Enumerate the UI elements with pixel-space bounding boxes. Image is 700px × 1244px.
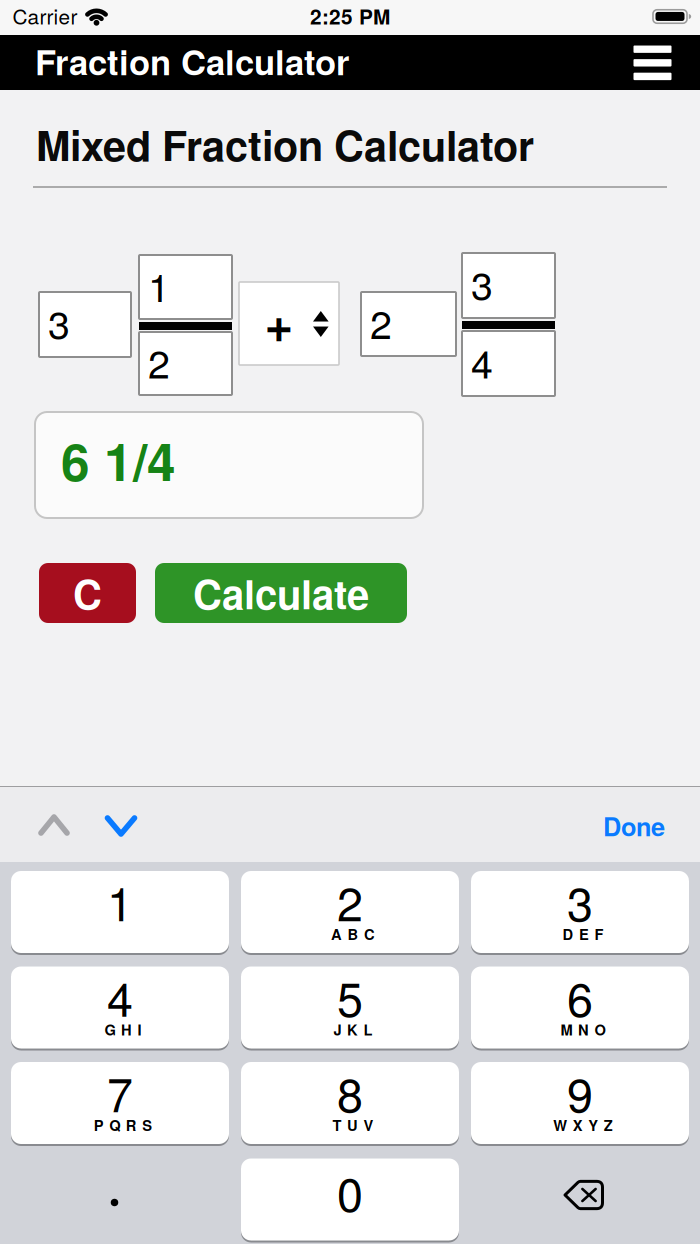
button[interactable]: First numerator [139, 255, 232, 319]
staticText: Fraction Calculator [35, 36, 349, 86]
button[interactable]: 9 [471, 1062, 689, 1146]
staticText: C [73, 564, 102, 622]
button[interactable]: 8 [241, 1062, 459, 1146]
staticText: 7 [107, 1059, 133, 1125]
staticText: JKL [333, 1019, 372, 1040]
button[interactable]: Second numerator [462, 253, 555, 318]
button[interactable]: Done [595, 800, 673, 852]
staticText: 3 [48, 294, 70, 351]
staticText: 3 [567, 868, 593, 934]
staticText: 9 [567, 1059, 593, 1125]
button[interactable]: Second whole number [361, 292, 456, 356]
staticText: 6 [567, 963, 593, 1030]
staticText: DEF [562, 923, 603, 944]
staticText: ABC [331, 923, 375, 944]
staticText: GHI [104, 1019, 141, 1040]
staticText: + [264, 287, 293, 357]
staticText: 1 [148, 257, 170, 313]
staticText: 2 [148, 333, 170, 390]
button[interactable]: Delete [471, 1157, 689, 1239]
staticText: MNO [560, 1019, 605, 1040]
staticText: 2 [337, 868, 363, 934]
button[interactable]: 3 [471, 871, 689, 955]
staticText: Calculate [193, 564, 369, 622]
staticText: Carrier [12, 1, 77, 30]
button[interactable]: 4 [11, 966, 229, 1050]
staticText: 3 [471, 255, 493, 312]
button[interactable]: 7 [11, 1062, 229, 1146]
staticText: 4 [471, 333, 493, 390]
button[interactable]: 5 [241, 966, 459, 1050]
button[interactable]: 6 [471, 966, 689, 1050]
staticText: 2 [370, 294, 392, 350]
staticText: TUV [332, 1114, 373, 1135]
staticText: 0 [337, 1158, 363, 1225]
button[interactable]: Operation [239, 282, 700, 1244]
button[interactable]: Next field [94, 805, 147, 847]
staticText: Done [603, 808, 665, 844]
button[interactable]: 1 [11, 871, 229, 955]
button[interactable]: First whole number [39, 292, 131, 357]
button[interactable]: Clear [39, 563, 136, 623]
button[interactable]: Previous field [28, 804, 80, 846]
button[interactable]: First denominator [139, 332, 232, 395]
button[interactable]: Second denominator [462, 331, 555, 396]
staticText: WXYZ [553, 1114, 613, 1135]
staticText: 8 [337, 1059, 363, 1125]
staticText: 6 1/4 [61, 423, 176, 497]
staticText: Mixed Fraction Calculator [36, 114, 534, 174]
button[interactable]: Decimal point [11, 1157, 229, 1239]
button[interactable]: Calculate [155, 563, 407, 623]
staticText: 4 [107, 963, 133, 1030]
staticText: 5 [337, 963, 363, 1030]
button[interactable]: 0 [241, 1157, 459, 1241]
staticText: PQRS [94, 1114, 152, 1135]
staticText: 2:25 PM [310, 1, 390, 31]
staticText: 1 [107, 868, 133, 934]
button[interactable]: Menu [625, 37, 679, 88]
button[interactable]: 2 [241, 871, 459, 955]
